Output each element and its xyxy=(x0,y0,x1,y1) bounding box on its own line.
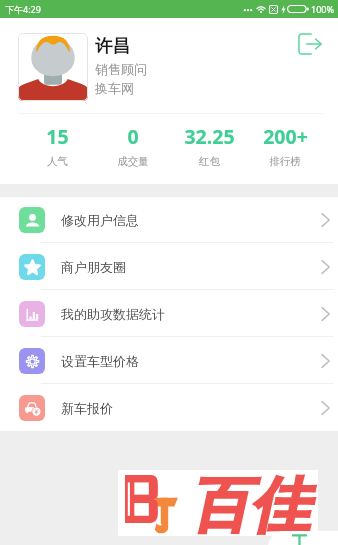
staticText: 32.25 xyxy=(184,123,235,150)
button[interactable]: 200+ xyxy=(247,114,323,184)
button[interactable]: 0 xyxy=(95,114,171,184)
staticText: 红包 xyxy=(199,155,220,168)
staticText: 我的助攻数据统计 xyxy=(61,306,165,322)
staticText: 100% xyxy=(311,3,334,15)
staticText: 许昌 xyxy=(95,35,130,57)
staticText: 设置车型价格 xyxy=(61,353,139,369)
staticText: 下午4:29 xyxy=(5,3,41,15)
staticText: 0 xyxy=(127,123,139,150)
staticText: 人气 xyxy=(47,155,68,168)
button[interactable]: 我的助攻数据统计 xyxy=(0,290,338,337)
staticText: 换车网 xyxy=(95,80,134,96)
button[interactable]: 新车报价 xyxy=(0,384,338,431)
button[interactable]: 设置车型价格 xyxy=(0,337,338,384)
staticText: 销售顾问 xyxy=(95,61,147,77)
button[interactable]: Log out xyxy=(294,28,326,60)
staticText: 新车报价 xyxy=(61,400,113,416)
button[interactable]: Avatar xyxy=(18,33,88,101)
button[interactable]: 修改用户信息 xyxy=(0,197,338,243)
staticText: 排行榜 xyxy=(269,155,301,168)
staticText: 修改用户信息 xyxy=(61,212,139,228)
button[interactable]: 商户朋友圈 xyxy=(0,243,338,290)
staticText: 200+ xyxy=(263,123,308,150)
staticText: 15 xyxy=(46,123,69,150)
staticText: 商户朋友圈 xyxy=(61,259,126,275)
button[interactable]: 15 xyxy=(20,114,95,184)
staticText: 成交量 xyxy=(117,155,149,168)
button[interactable]: 32.25 xyxy=(171,114,247,184)
